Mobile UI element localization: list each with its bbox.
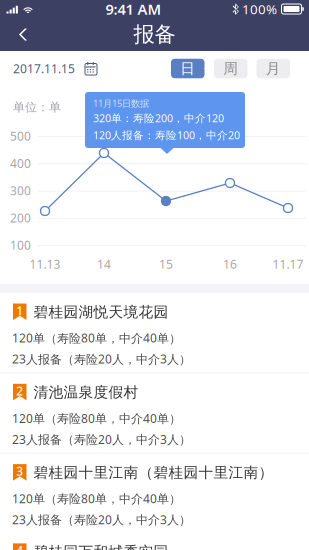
staticText: 碧桂园十里江南（碧桂园十里江南）: [33, 464, 273, 482]
button[interactable]: Back: [0, 18, 36, 51]
staticText: 日: [180, 59, 195, 77]
staticText: 500: [10, 128, 31, 144]
button[interactable]: 2017.11.15: [0, 53, 105, 83]
staticText: 15: [159, 256, 173, 272]
staticText: 120单（寿险80单，中介40单）: [12, 330, 181, 346]
button[interactable]: 4: [0, 534, 309, 550]
staticText: 23人报备（寿险20人，中介3人）: [12, 512, 191, 527]
staticText: 9:41 AM: [105, 0, 161, 19]
staticText: 碧桂园万和城秀实园: [33, 543, 168, 550]
staticText: 月: [266, 59, 281, 77]
button[interactable]: 1: [0, 293, 309, 372]
button[interactable]: 3: [0, 454, 309, 533]
staticText: 2: [16, 383, 23, 399]
staticText: 11.13: [29, 256, 60, 272]
staticText: 碧桂园湖悦天境花园: [33, 303, 168, 321]
staticText: 120单（寿险80单，中介40单）: [12, 410, 181, 426]
staticText: 11.17: [272, 256, 303, 272]
staticText: 报备: [133, 21, 175, 48]
staticText: 23人报备（寿险20人，中介3人）: [12, 351, 191, 367]
staticText: 120人报备：寿险100，中介20: [93, 128, 240, 142]
staticText: 120单（寿险80单，中介40单）: [12, 491, 181, 506]
button[interactable]: 周: [214, 59, 247, 78]
staticText: 300: [10, 183, 31, 198]
staticText: 11月15日数据: [93, 97, 149, 109]
button[interactable]: 日: [171, 59, 204, 78]
staticText: 320单：寿险200，中介120: [93, 111, 224, 125]
staticText: 400: [10, 155, 31, 171]
staticText: 1: [16, 302, 23, 318]
staticText: 3: [16, 463, 23, 479]
staticText: 清池温泉度假村: [33, 383, 138, 401]
staticText: 100: [10, 237, 31, 253]
staticText: 100%: [242, 0, 277, 18]
button[interactable]: 月: [256, 59, 290, 78]
button[interactable]: 2: [0, 373, 309, 453]
staticText: 16: [223, 256, 237, 272]
staticText: 200: [10, 210, 31, 226]
staticText: 14: [97, 256, 111, 272]
staticText: 单位：单: [13, 100, 61, 115]
staticText: 4: [16, 542, 23, 550]
staticText: 2017.11.15: [13, 60, 75, 76]
staticText: 23人报备（寿险20人，中介3人）: [12, 431, 191, 447]
staticText: 周: [223, 59, 238, 77]
